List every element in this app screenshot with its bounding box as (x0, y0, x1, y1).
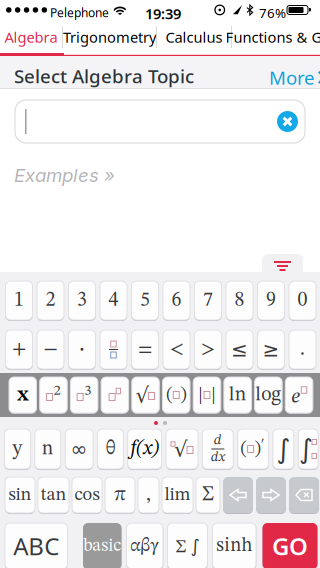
button[interactable]: 3 (68, 281, 95, 320)
button[interactable]: 7 (194, 281, 221, 320)
button[interactable]: Functions & Gra (232, 22, 320, 52)
staticText: − (43, 339, 57, 359)
button[interactable]: ∫ (273, 429, 294, 469)
staticText: dx (211, 450, 225, 464)
button[interactable]: Calculus (157, 22, 231, 52)
staticText: = (138, 339, 152, 359)
button[interactable]: ( (162, 377, 190, 413)
button[interactable]: > (194, 330, 221, 369)
staticText: e (291, 386, 300, 408)
staticText: ≥ (262, 338, 279, 361)
button[interactable]: Σ ∫ (167, 523, 207, 568)
staticText: 8 (234, 290, 244, 310)
button[interactable] (100, 330, 127, 369)
button[interactable]: + (5, 330, 32, 369)
button[interactable]: αβγ (126, 523, 163, 568)
button[interactable]: 4 (100, 281, 127, 320)
staticText: < (169, 339, 183, 359)
staticText: cos (74, 486, 99, 504)
button[interactable]: Trigonometry (63, 22, 156, 52)
staticText: √ (174, 437, 188, 461)
button[interactable]: GO (262, 523, 317, 568)
button[interactable]: · (68, 330, 95, 369)
button[interactable]: = (131, 330, 158, 369)
staticText: Calculus (165, 27, 222, 47)
button[interactable]: 0 (289, 281, 316, 320)
staticText: θ (105, 439, 115, 459)
button[interactable]: 9 (257, 281, 284, 320)
button[interactable]: n (35, 429, 61, 469)
button[interactable]: 8 (226, 281, 253, 320)
button[interactable]: sin (5, 477, 35, 513)
staticText: 2 (45, 290, 55, 310)
button[interactable]: √ (166, 429, 198, 469)
staticText: Functions & Gra (225, 27, 320, 47)
button[interactable]: , (138, 477, 159, 513)
button[interactable]: ∞ (65, 429, 93, 469)
button[interactable] (289, 477, 319, 513)
staticText: 7 (203, 290, 213, 310)
button[interactable]: √ (132, 377, 159, 413)
staticText: n (42, 439, 54, 459)
button[interactable]: basic (83, 523, 121, 568)
staticText: Algebra (4, 27, 57, 47)
staticText: ( (166, 386, 172, 404)
button[interactable]: cos (72, 477, 102, 513)
button[interactable]: 6 (163, 281, 190, 320)
button[interactable]: θ (97, 429, 123, 469)
button[interactable]: 2 (37, 281, 64, 320)
button[interactable]: More (269, 65, 320, 90)
staticText: Trigonometry (63, 27, 156, 47)
button[interactable]: ( (238, 429, 269, 469)
button[interactable]: ln (224, 377, 251, 413)
staticText: tan (40, 486, 66, 504)
button[interactable] (277, 111, 298, 132)
button[interactable] (101, 377, 129, 413)
button[interactable]: . (289, 330, 316, 369)
staticText: 3 (77, 290, 87, 310)
staticText: 9 (266, 290, 276, 310)
button[interactable]: ABC (5, 523, 67, 568)
button[interactable]: − (37, 330, 64, 369)
staticText: π (114, 485, 126, 505)
button[interactable]: 1 (5, 281, 32, 320)
button[interactable]: ∫ (298, 429, 318, 469)
staticText: + (12, 339, 26, 359)
button[interactable]: tan (38, 477, 69, 513)
button[interactable]: 5 (131, 281, 158, 320)
staticText: 76% (259, 4, 286, 22)
staticText: ∫ (299, 433, 313, 464)
button[interactable]: Σ (196, 477, 220, 513)
button[interactable]: sinh (212, 523, 256, 568)
button[interactable]: y (4, 429, 30, 469)
button[interactable]: lim (162, 477, 193, 513)
button[interactable]: ≤ (226, 330, 253, 369)
staticText: Pelephone (50, 5, 109, 20)
button[interactable]: 3 (70, 377, 98, 413)
button[interactable]: x (9, 377, 36, 413)
staticText: sin (8, 486, 31, 504)
button[interactable] (15, 100, 305, 143)
staticText: . (300, 339, 305, 359)
staticText: x (17, 384, 28, 406)
staticText: y (12, 439, 22, 459)
button[interactable]: e (285, 377, 313, 413)
button[interactable]: π (105, 477, 135, 513)
staticText: ≤ (231, 338, 248, 361)
button[interactable]: log (255, 377, 282, 413)
button[interactable]: f(x) (128, 429, 162, 469)
button[interactable] (262, 254, 303, 278)
staticText: f(x) (130, 439, 159, 459)
staticText: · (78, 337, 85, 361)
staticText: ∫ (276, 433, 290, 464)
button[interactable] (223, 477, 253, 513)
button[interactable]: Algebra (0, 22, 62, 52)
staticText: 1 (14, 290, 24, 310)
button[interactable]: | (193, 377, 221, 413)
button[interactable]: d (202, 429, 233, 469)
button[interactable]: ≥ (257, 330, 284, 369)
button[interactable] (256, 477, 286, 513)
button[interactable]: < (163, 330, 190, 369)
button[interactable]: 2 (40, 377, 67, 413)
button[interactable]: Examples » (14, 164, 115, 187)
